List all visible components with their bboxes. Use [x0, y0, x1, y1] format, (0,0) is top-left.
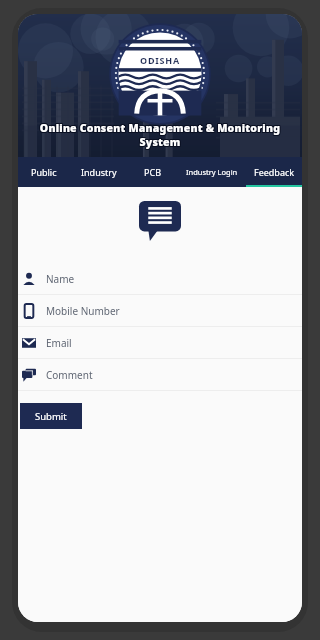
- button[interactable]: Industry Login: [177, 157, 246, 187]
- staticText: Online Consent Management & Monitoring S…: [18, 120, 302, 148]
- staticText: Email: [46, 336, 72, 350]
- staticText: Online Consent Management & Monitoring S…: [18, 121, 301, 149]
- staticText: Online Consent Management & Monitoring S…: [19, 122, 302, 150]
- staticText: Online Consent Management & Monitoring S…: [18, 121, 302, 149]
- staticText: PCB: [144, 166, 161, 178]
- button[interactable]: PCB: [128, 157, 177, 187]
- staticText: Mobile Number: [46, 304, 120, 318]
- staticText: Industry Login: [186, 167, 238, 177]
- staticText: Comment: [46, 368, 93, 382]
- button[interactable]: Public: [18, 157, 70, 187]
- staticText: Submit: [35, 410, 67, 423]
- staticText: Online Consent Management & Monitoring S…: [19, 121, 302, 149]
- staticText: Online Consent Management & Monitoring S…: [18, 122, 301, 150]
- staticText: Public: [31, 166, 57, 178]
- button[interactable]: Industry: [70, 157, 128, 187]
- button[interactable]: Mobile Number: [18, 295, 302, 327]
- button[interactable]: Comment: [18, 359, 302, 391]
- staticText: Online Consent Management & Monitoring S…: [18, 122, 302, 150]
- staticText: Industry: [81, 166, 117, 178]
- staticText: Online Consent Management & Monitoring S…: [18, 120, 301, 148]
- staticText: Feedback: [254, 166, 295, 178]
- button[interactable]: Email: [18, 327, 302, 359]
- button[interactable]: Feedback: [246, 157, 302, 187]
- other: Feedback: [139, 201, 181, 241]
- staticText: ODISHA: [140, 54, 181, 66]
- button[interactable]: Submit: [20, 403, 82, 429]
- button[interactable]: Name: [18, 263, 302, 295]
- staticText: Name: [46, 272, 75, 286]
- staticText: Online Consent Management & Monitoring S…: [19, 120, 302, 148]
